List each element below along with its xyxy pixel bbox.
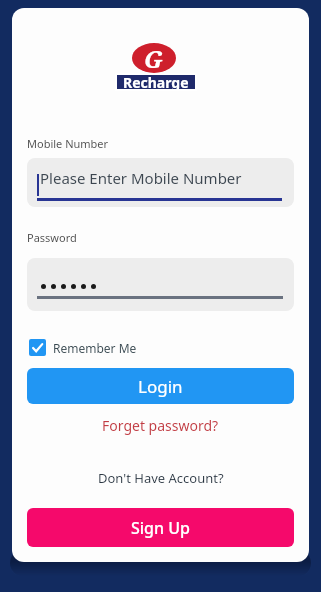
staticText: G <box>144 42 164 72</box>
staticText: Please Enter Mobile Number <box>40 168 242 188</box>
staticText: Mobile Number <box>27 136 109 151</box>
button[interactable]: Login <box>27 368 294 404</box>
staticText: Sign Up <box>131 517 190 539</box>
staticText: Recharge <box>123 73 189 91</box>
button[interactable]: Remember Me <box>27 339 137 356</box>
staticText: Login <box>138 375 183 398</box>
button[interactable] <box>27 258 294 311</box>
staticText: Don't Have Account? <box>98 469 224 487</box>
button[interactable]: Sign Up <box>27 508 294 547</box>
staticText: Password <box>27 230 77 245</box>
staticText: Remember Me <box>53 340 137 356</box>
button[interactable]: Please Enter Mobile Number <box>27 158 294 207</box>
button[interactable]: Forget password? <box>102 416 219 435</box>
